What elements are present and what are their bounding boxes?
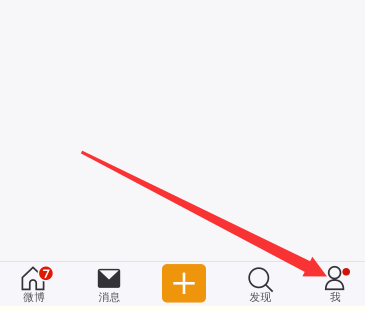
button[interactable]: 消息	[0, 0, 365, 311]
button[interactable]: Compose	[0, 0, 365, 311]
staticText: 微博	[23, 291, 45, 304]
staticText: 消息	[99, 291, 121, 304]
staticText: 发现	[250, 291, 272, 304]
button[interactable]: 发现	[0, 0, 365, 311]
staticText: 我	[330, 291, 341, 304]
button[interactable]: 微博	[0, 0, 365, 311]
button[interactable]: 我	[0, 0, 365, 311]
